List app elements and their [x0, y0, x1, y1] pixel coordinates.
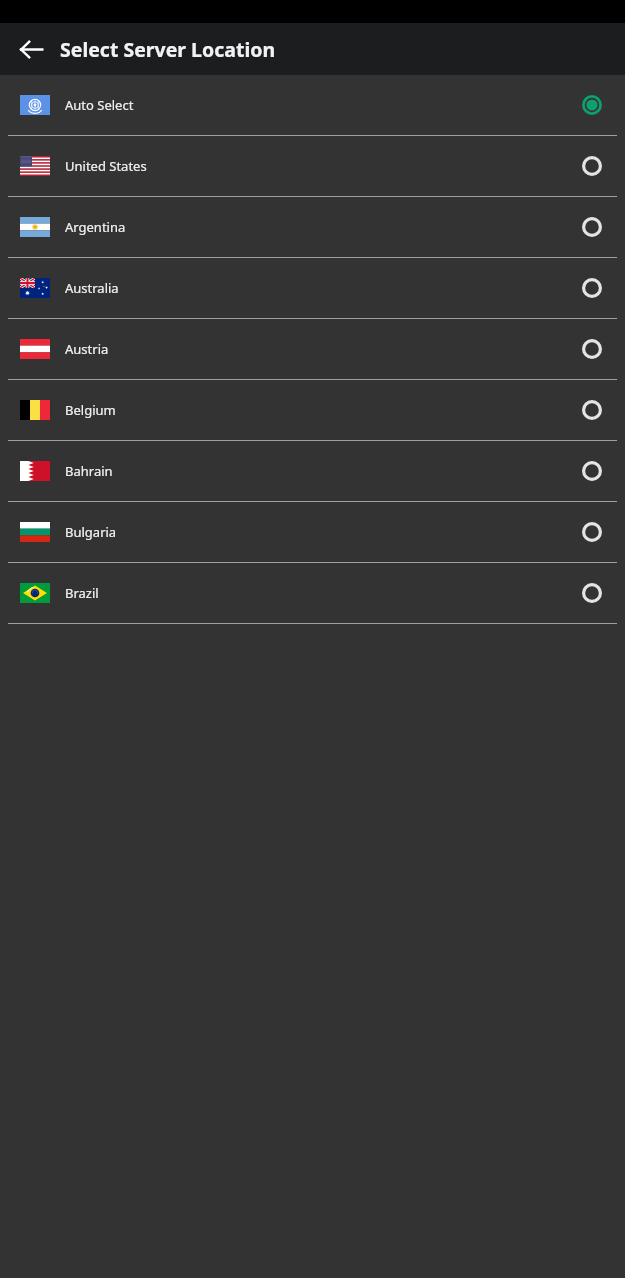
button[interactable]: Bulgaria: [0, 502, 625, 563]
button[interactable]: Brazil: [0, 563, 625, 624]
staticText: Austria: [65, 340, 109, 358]
button[interactable]: Auto Select: [0, 75, 625, 136]
staticText: Auto Select: [65, 96, 134, 114]
button[interactable]: Australia option: [577, 273, 607, 303]
button[interactable]: Bulgaria option: [577, 517, 607, 547]
button[interactable]: Argentina: [0, 197, 625, 258]
staticText: United States: [65, 157, 147, 175]
button[interactable]: Bahrain: [0, 441, 625, 502]
button[interactable]: Argentina option: [577, 212, 607, 242]
staticText: Australia: [65, 279, 119, 297]
button[interactable]: Brazil option: [577, 578, 607, 608]
staticText: Select Server Location: [60, 36, 276, 63]
button[interactable]: Auto Select option: [577, 90, 607, 120]
button[interactable]: Austria option: [577, 334, 607, 364]
button[interactable]: Belgium option: [577, 395, 607, 425]
button[interactable]: United States option: [577, 151, 607, 181]
button[interactable]: Belgium: [0, 380, 625, 441]
button[interactable]: Back: [11, 29, 51, 69]
staticText: Argentina: [65, 218, 126, 236]
button[interactable]: Austria: [0, 319, 625, 380]
staticText: Belgium: [65, 401, 116, 419]
staticText: Bulgaria: [65, 523, 117, 541]
button[interactable]: Australia: [0, 258, 625, 319]
button[interactable]: United States: [0, 136, 625, 197]
staticText: Brazil: [65, 584, 99, 602]
staticText: Bahrain: [65, 462, 113, 480]
button[interactable]: Bahrain option: [577, 456, 607, 486]
